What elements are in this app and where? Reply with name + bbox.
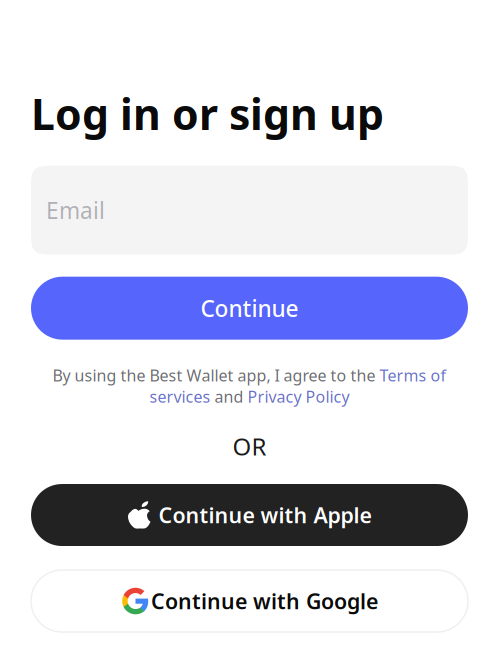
staticText: services — [149, 386, 210, 407]
button[interactable]: Terms of — [379, 365, 446, 386]
staticText: OR — [232, 430, 266, 462]
staticText: By using the Best Wallet app, I agree to… — [52, 365, 379, 386]
button[interactable]: Continue with Google — [31, 570, 468, 632]
button[interactable]: Continue — [31, 277, 468, 340]
button[interactable]: Privacy Policy — [247, 386, 349, 407]
button[interactable]: services — [149, 386, 210, 407]
staticText: Log in or sign up — [31, 85, 384, 142]
staticText: and — [210, 386, 247, 407]
staticText: Email — [46, 195, 105, 225]
staticText: Continue with Apple — [158, 501, 371, 529]
staticText: Privacy Policy — [247, 386, 349, 407]
staticText: Terms of — [379, 365, 446, 386]
button[interactable]: Continue with Apple — [31, 484, 468, 546]
staticText: Continue — [200, 293, 298, 323]
staticText: Continue with Google — [151, 587, 378, 615]
